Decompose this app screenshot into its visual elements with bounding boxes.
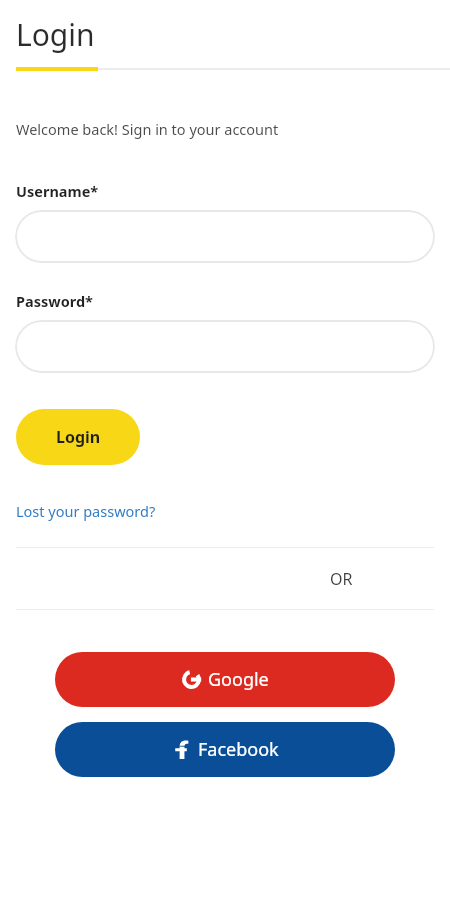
button[interactable]: Facebook [55, 722, 395, 777]
button[interactable]: Login [16, 409, 140, 465]
staticText: Username* [16, 181, 99, 201]
other: Facebook [172, 740, 191, 759]
staticText: Google [208, 667, 269, 692]
staticText: Lost your password? [16, 501, 156, 521]
staticText: OR [330, 568, 353, 590]
staticText: Login [56, 426, 101, 448]
other: Google [182, 670, 201, 689]
button[interactable]: Google [55, 652, 395, 707]
staticText: Login [16, 14, 95, 55]
staticText: Facebook [198, 737, 279, 762]
staticText: Welcome back! Sign in to your account [16, 119, 279, 139]
button[interactable] [15, 320, 435, 373]
button[interactable]: Lost your password? [16, 501, 156, 521]
staticText: Password* [16, 291, 93, 311]
button[interactable] [15, 210, 435, 263]
